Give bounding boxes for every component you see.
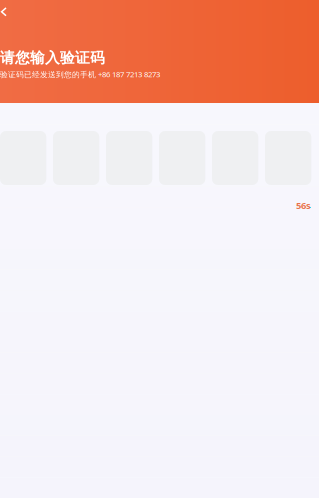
button[interactable]: Back — [0, 0, 26, 26]
button[interactable]: 56s — [296, 199, 319, 212]
staticText: 56s — [296, 199, 311, 212]
staticText: 验证码已经发送到您的手机 +86 187 7213 8273 — [0, 69, 160, 79]
staticText: 请您输入验证码 — [0, 49, 105, 67]
